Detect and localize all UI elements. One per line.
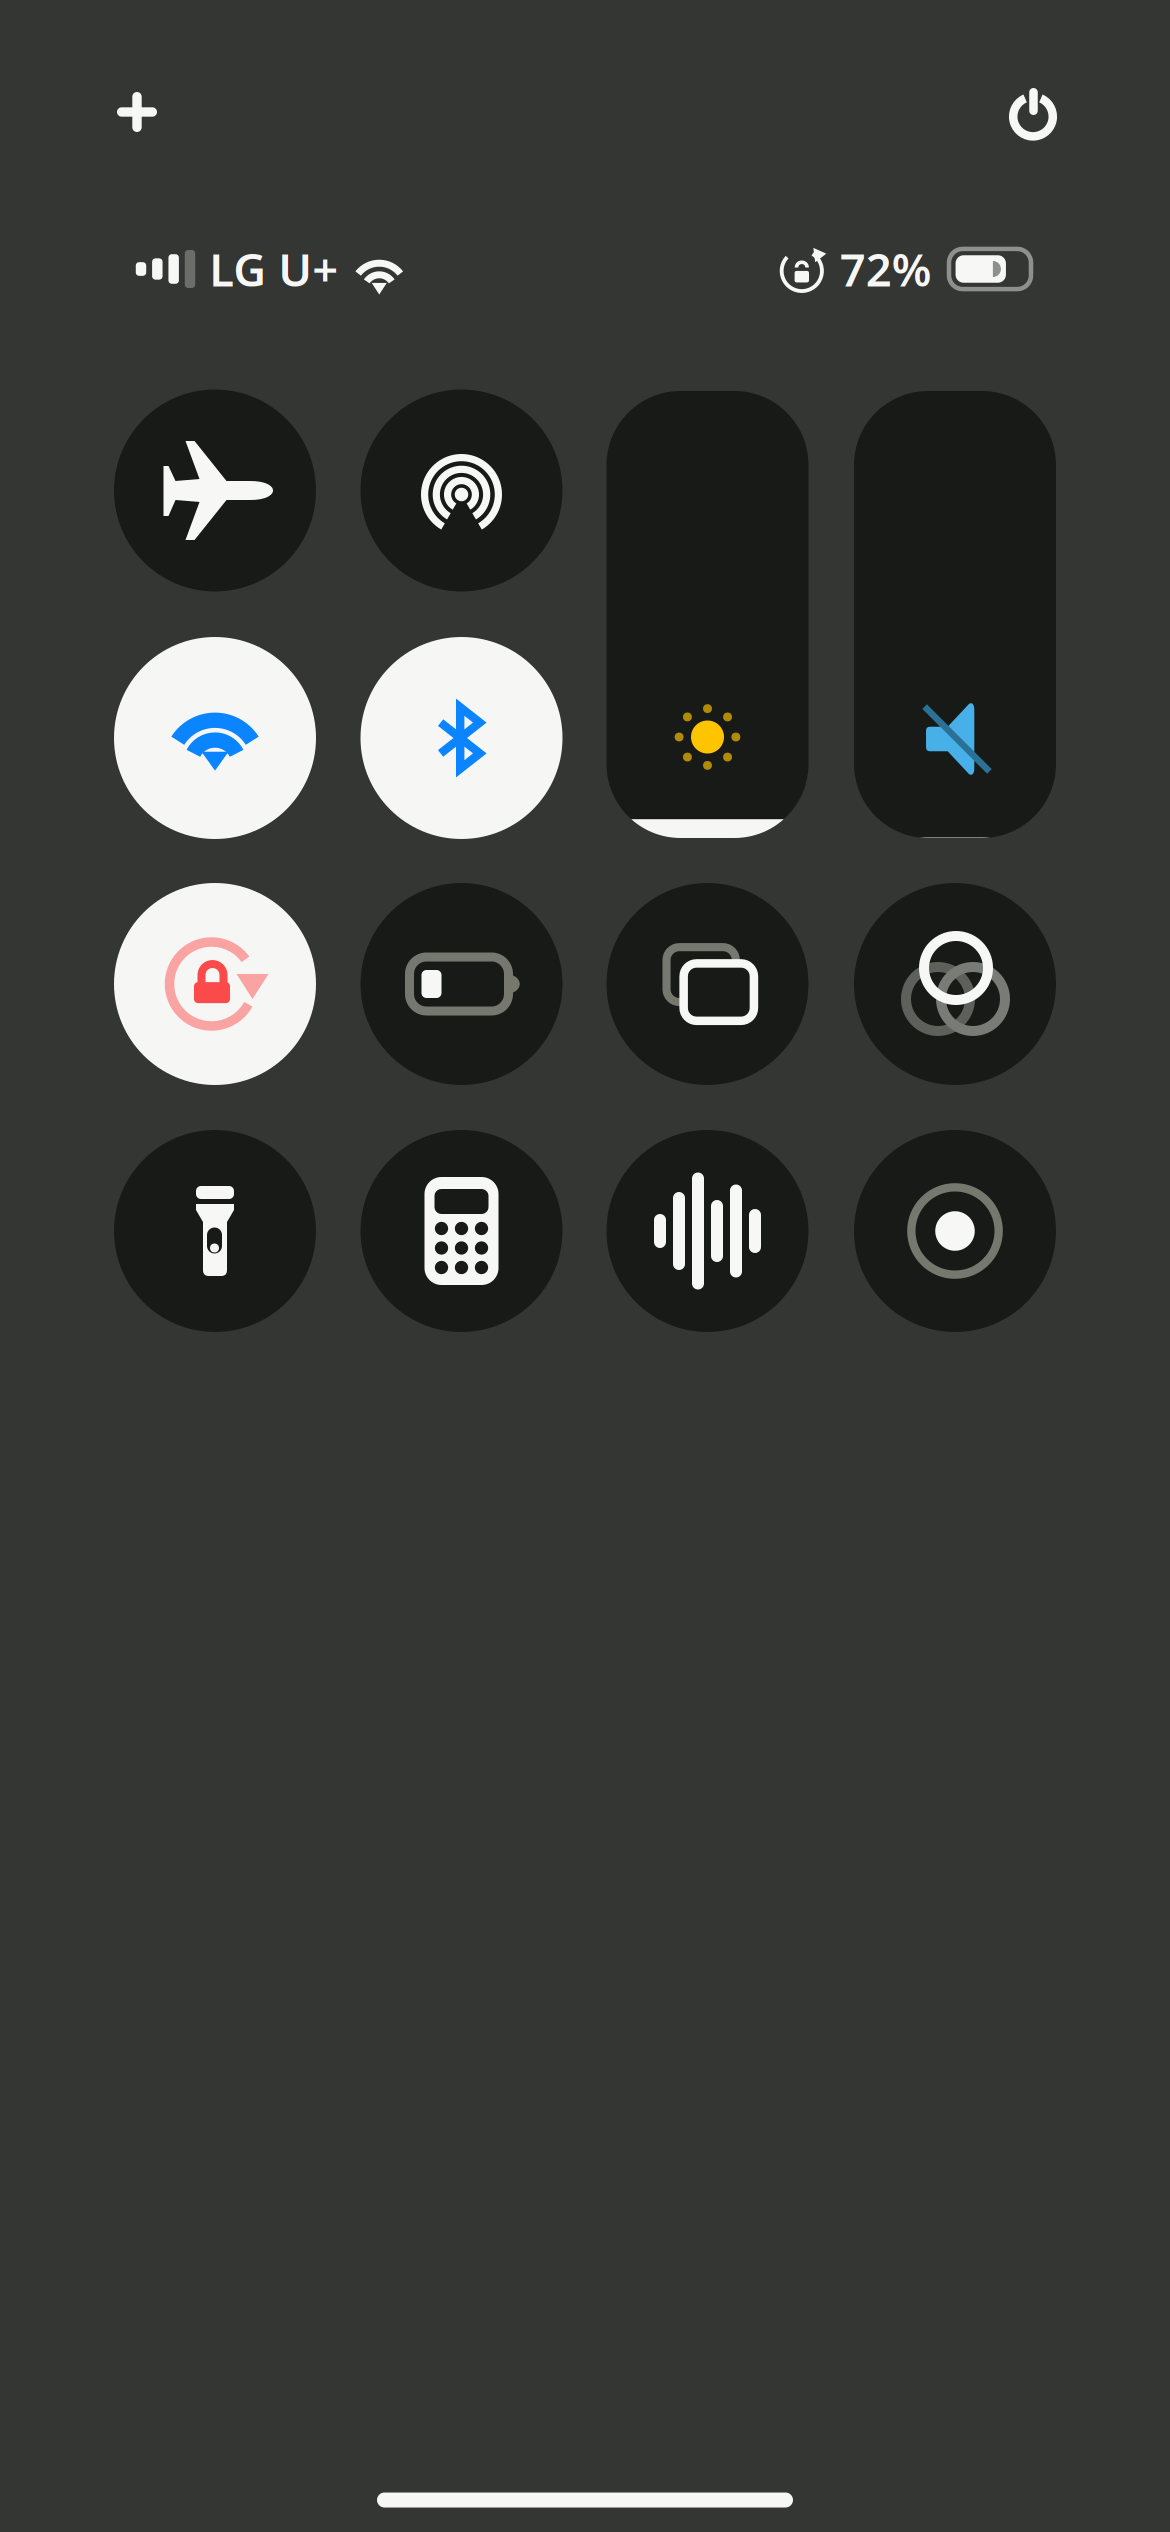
button[interactable]: Volume <box>854 391 1056 838</box>
button[interactable]: AirDrop <box>360 389 562 591</box>
button[interactable]: Sound Recognition <box>606 1130 808 1332</box>
staticText: 72% <box>840 239 932 299</box>
button[interactable]: Brightness <box>606 391 808 838</box>
button[interactable]: Focus <box>854 883 1056 1085</box>
staticText: LG U+ <box>209 239 338 299</box>
button[interactable]: Wi-Fi <box>114 637 316 839</box>
button[interactable]: Add a Control <box>77 52 197 172</box>
button[interactable]: Screen Recording <box>854 1130 1056 1332</box>
button[interactable]: Flashlight <box>114 1130 316 1332</box>
button[interactable]: Calculator <box>360 1130 562 1332</box>
button[interactable]: Screen Mirroring <box>606 883 808 1085</box>
button[interactable]: Power Off <box>973 53 1093 173</box>
button[interactable]: Rotation Lock <box>114 883 316 1085</box>
button[interactable]: Airplane Mode <box>114 389 316 591</box>
button[interactable]: Low Power Mode <box>360 883 562 1085</box>
button[interactable]: Bluetooth <box>360 637 562 839</box>
